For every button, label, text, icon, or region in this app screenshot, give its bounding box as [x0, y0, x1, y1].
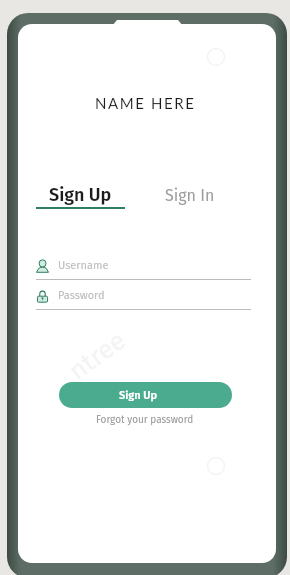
staticText: ntree: [63, 324, 132, 386]
staticText: NAME HERE: [95, 94, 196, 112]
staticText: Password: [58, 289, 105, 302]
staticText: Sign In: [165, 186, 215, 205]
button[interactable]: Password: [36, 288, 251, 303]
staticText: Username: [58, 259, 109, 272]
staticText: Sign Up: [119, 389, 158, 402]
button[interactable]: Username: [36, 258, 251, 273]
button[interactable]: Sign In: [159, 180, 221, 210]
button[interactable]: Sign Up: [36, 180, 125, 210]
button[interactable]: Forgot your password: [96, 414, 194, 426]
other: Username: [36, 258, 49, 273]
staticText: Sign Up: [49, 184, 112, 206]
other: Password: [36, 288, 49, 303]
button[interactable]: Sign Up: [59, 382, 232, 408]
